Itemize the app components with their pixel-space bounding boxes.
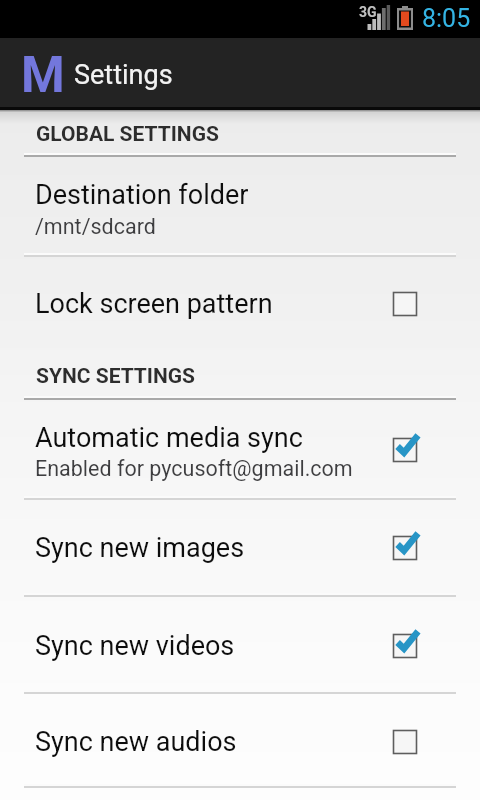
- staticText: Sync new images: [35, 532, 245, 564]
- other: Signal strength 3G: [356, 1, 392, 33]
- button[interactable]: [0, 257, 480, 353]
- button[interactable]: App icon: [20, 48, 66, 96]
- other: Battery: [397, 6, 414, 32]
- button[interactable]: Toggle setting: [393, 628, 427, 660]
- button[interactable]: Toggle setting: [393, 432, 427, 464]
- button[interactable]: [0, 597, 480, 690]
- staticText: 8:05: [422, 4, 471, 33]
- button[interactable]: Toggle setting: [393, 530, 427, 562]
- staticText: Enabled for pycusoft@gmail.com: [35, 456, 353, 481]
- button[interactable]: Toggle setting: [393, 286, 427, 318]
- staticText: Sync new audios: [35, 726, 237, 758]
- staticText: Lock screen pattern: [35, 288, 273, 320]
- button[interactable]: [0, 694, 480, 784]
- staticText: 3G: [359, 4, 377, 20]
- button[interactable]: Toggle setting: [393, 724, 427, 756]
- staticText: Automatic media sync: [35, 422, 303, 454]
- staticText: GLOBAL SETTINGS: [36, 122, 219, 147]
- button[interactable]: [0, 500, 480, 593]
- staticText: Settings: [74, 59, 173, 91]
- staticText: /mnt/sdcard: [35, 214, 156, 239]
- staticText: Sync new videos: [35, 630, 235, 662]
- button[interactable]: [0, 110, 480, 253]
- staticText: Destination folder: [35, 179, 249, 211]
- staticText: M: [21, 46, 65, 94]
- button[interactable]: [0, 400, 480, 496]
- staticText: SYNC SETTINGS: [36, 364, 196, 389]
